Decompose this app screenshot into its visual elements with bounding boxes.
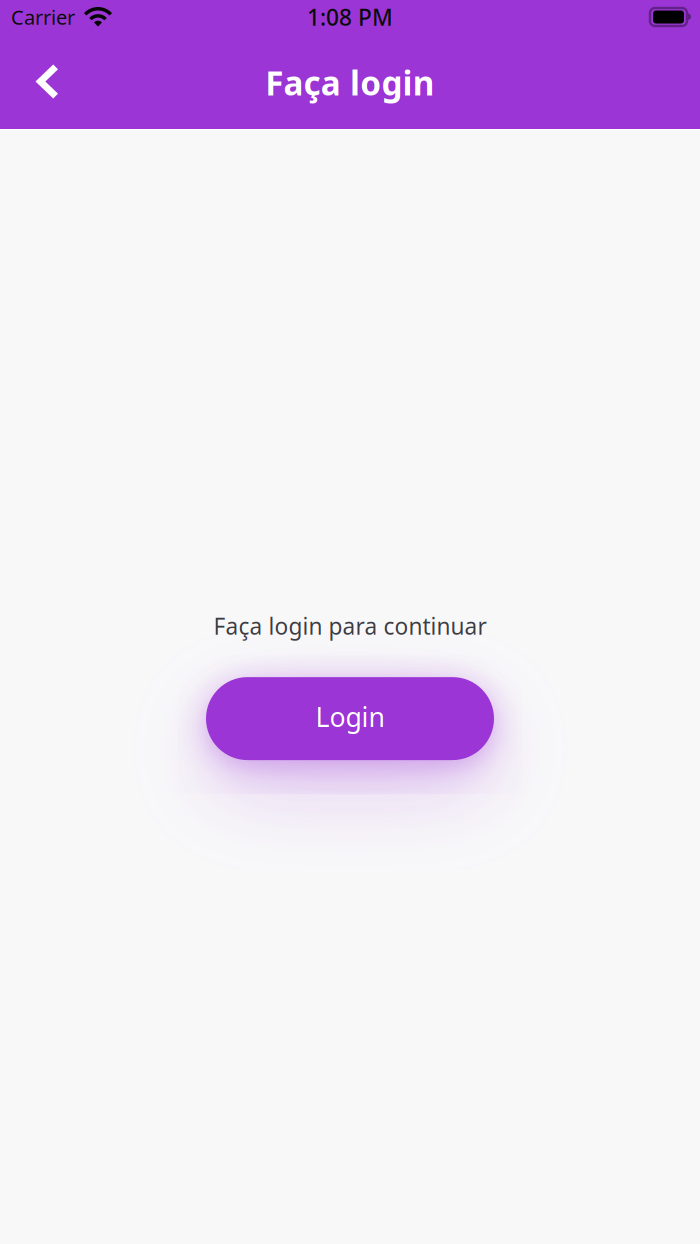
button[interactable]: Back [0,48,77,114]
button[interactable]: Login [206,677,494,760]
staticText: Faça login [265,60,435,105]
staticText: Faça login para continuar [213,611,486,641]
staticText: Login [315,699,384,734]
staticText: 1:08 PM [307,2,393,32]
staticText: Carrier [11,4,75,30]
